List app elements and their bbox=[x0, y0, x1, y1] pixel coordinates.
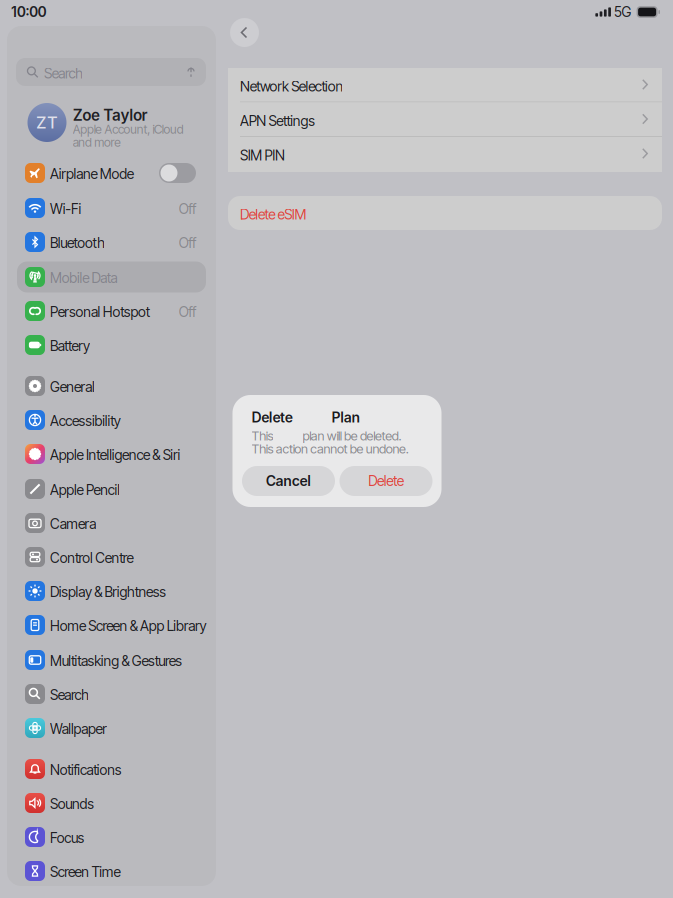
staticText: Personal Hotspot bbox=[50, 303, 150, 320]
button[interactable]: Back bbox=[230, 18, 259, 47]
button[interactable]: Apple Pencil bbox=[17, 473, 206, 504]
staticText: Battery bbox=[50, 337, 90, 354]
staticText: Camera bbox=[50, 515, 96, 532]
button[interactable]: Battery bbox=[17, 329, 206, 360]
staticText: Off bbox=[179, 200, 196, 217]
staticText: Apple Account, iCloud bbox=[73, 122, 184, 137]
button[interactable]: Wallpaper bbox=[17, 712, 206, 743]
staticText: Home Screen & App Library bbox=[50, 617, 207, 634]
staticText: Off bbox=[179, 303, 196, 320]
staticText: Delete bbox=[368, 472, 404, 489]
staticText: Bluetooth bbox=[50, 234, 105, 251]
staticText: Notifications bbox=[50, 761, 122, 778]
button[interactable]: Mobile Data bbox=[17, 261, 206, 292]
staticText: This bbox=[251, 428, 273, 443]
staticText: Off bbox=[179, 234, 196, 251]
button[interactable]: APN Settings bbox=[228, 102, 662, 136]
staticText: ZT bbox=[36, 112, 58, 132]
staticText: Display & Brightness bbox=[50, 583, 166, 600]
button[interactable]: ZT bbox=[16, 101, 206, 147]
button[interactable]: Personal Hotspot bbox=[17, 295, 206, 326]
button[interactable]: Home Screen & App Library bbox=[17, 609, 206, 640]
staticText: Multitasking & Gestures bbox=[50, 652, 182, 669]
button[interactable]: Delete eSIM bbox=[228, 196, 662, 230]
staticText: and more bbox=[73, 135, 121, 150]
staticText: 10:00 bbox=[11, 3, 47, 20]
staticText: Sounds bbox=[50, 795, 94, 812]
button[interactable]: Focus bbox=[17, 821, 206, 852]
button[interactable]: Search bbox=[16, 58, 206, 86]
staticText: Search bbox=[44, 65, 83, 82]
staticText: Mobile Data bbox=[50, 269, 117, 286]
button[interactable]: Apple Intelligence & Siri bbox=[17, 438, 206, 469]
staticText: Control Centre bbox=[50, 549, 133, 566]
button[interactable]: Sounds bbox=[17, 787, 206, 818]
staticText: Airplane Mode bbox=[50, 165, 134, 182]
staticText: Accessibility bbox=[50, 412, 121, 429]
button[interactable]: Delete bbox=[339, 466, 432, 496]
button[interactable]: Display & Brightness bbox=[17, 575, 206, 606]
staticText: Zoe Taylor bbox=[73, 106, 148, 124]
staticText: 5G bbox=[614, 3, 632, 20]
button[interactable]: Multitasking & Gestures bbox=[17, 644, 206, 675]
button[interactable]: Network Selection bbox=[228, 68, 662, 101]
staticText: Cancel bbox=[266, 472, 311, 489]
staticText: General bbox=[50, 378, 95, 395]
staticText: Wi-Fi bbox=[50, 200, 82, 217]
staticText: This action cannot be undone. bbox=[251, 441, 409, 456]
staticText: Delete bbox=[251, 409, 293, 426]
staticText: Search bbox=[50, 686, 89, 703]
staticText: Apple Pencil bbox=[50, 481, 120, 498]
staticText: Screen Time bbox=[50, 863, 120, 880]
button[interactable]: Control Centre bbox=[17, 541, 206, 572]
button[interactable]: Camera bbox=[17, 507, 206, 538]
button[interactable]: Bluetooth bbox=[17, 226, 206, 257]
staticText: Apple Intelligence & Siri bbox=[50, 446, 181, 463]
button[interactable]: Airplane Mode bbox=[17, 157, 206, 188]
button[interactable]: Screen Time bbox=[17, 855, 206, 886]
staticText: Wallpaper bbox=[50, 720, 107, 737]
staticText: plan will be deleted. bbox=[302, 428, 401, 443]
button[interactable]: Wi-Fi bbox=[17, 192, 206, 223]
staticText: Focus bbox=[50, 829, 85, 846]
staticText: Network Selection bbox=[240, 78, 343, 95]
staticText: Delete eSIM bbox=[240, 206, 306, 223]
button[interactable]: Notifications bbox=[17, 753, 206, 784]
button[interactable]: Accessibility bbox=[17, 404, 206, 435]
staticText: Plan bbox=[331, 409, 360, 426]
button[interactable]: Cancel bbox=[242, 466, 335, 496]
button[interactable]: SIM PIN bbox=[228, 137, 662, 172]
button[interactable]: General bbox=[17, 370, 206, 401]
staticText: APN Settings bbox=[240, 112, 315, 129]
staticText: SIM PIN bbox=[240, 147, 285, 164]
button[interactable]: Search bbox=[17, 678, 206, 709]
